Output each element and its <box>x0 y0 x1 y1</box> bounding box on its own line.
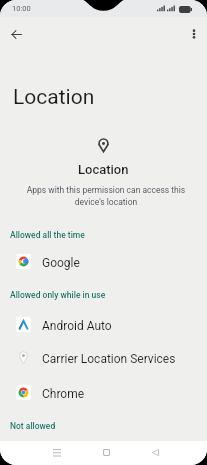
staticText: Location <box>78 162 129 177</box>
staticText: Google <box>42 256 80 270</box>
button[interactable]: Back <box>143 440 167 464</box>
staticText: Location <box>13 85 95 110</box>
button[interactable]: Home <box>94 440 118 464</box>
button[interactable]: Android Auto <box>0 309 207 340</box>
staticText: Carrier Location Services <box>42 352 176 366</box>
button[interactable]: Recents <box>45 440 69 464</box>
button[interactable]: Carrier Location Services <box>0 342 207 373</box>
staticText: Allowed all the time <box>10 230 85 240</box>
staticText: Not allowed <box>10 421 56 431</box>
staticText: Chrome <box>42 387 85 401</box>
staticText: Apps with this permission can access thi… <box>23 185 189 207</box>
button[interactable]: Back <box>4 22 28 46</box>
staticText: Allowed only while in use <box>10 290 106 300</box>
button[interactable]: Chrome <box>0 377 207 408</box>
button[interactable]: Google <box>0 246 207 277</box>
staticText: Android Auto <box>42 319 112 333</box>
button[interactable]: More options <box>182 22 206 46</box>
staticText: 10:00 <box>12 4 31 13</box>
